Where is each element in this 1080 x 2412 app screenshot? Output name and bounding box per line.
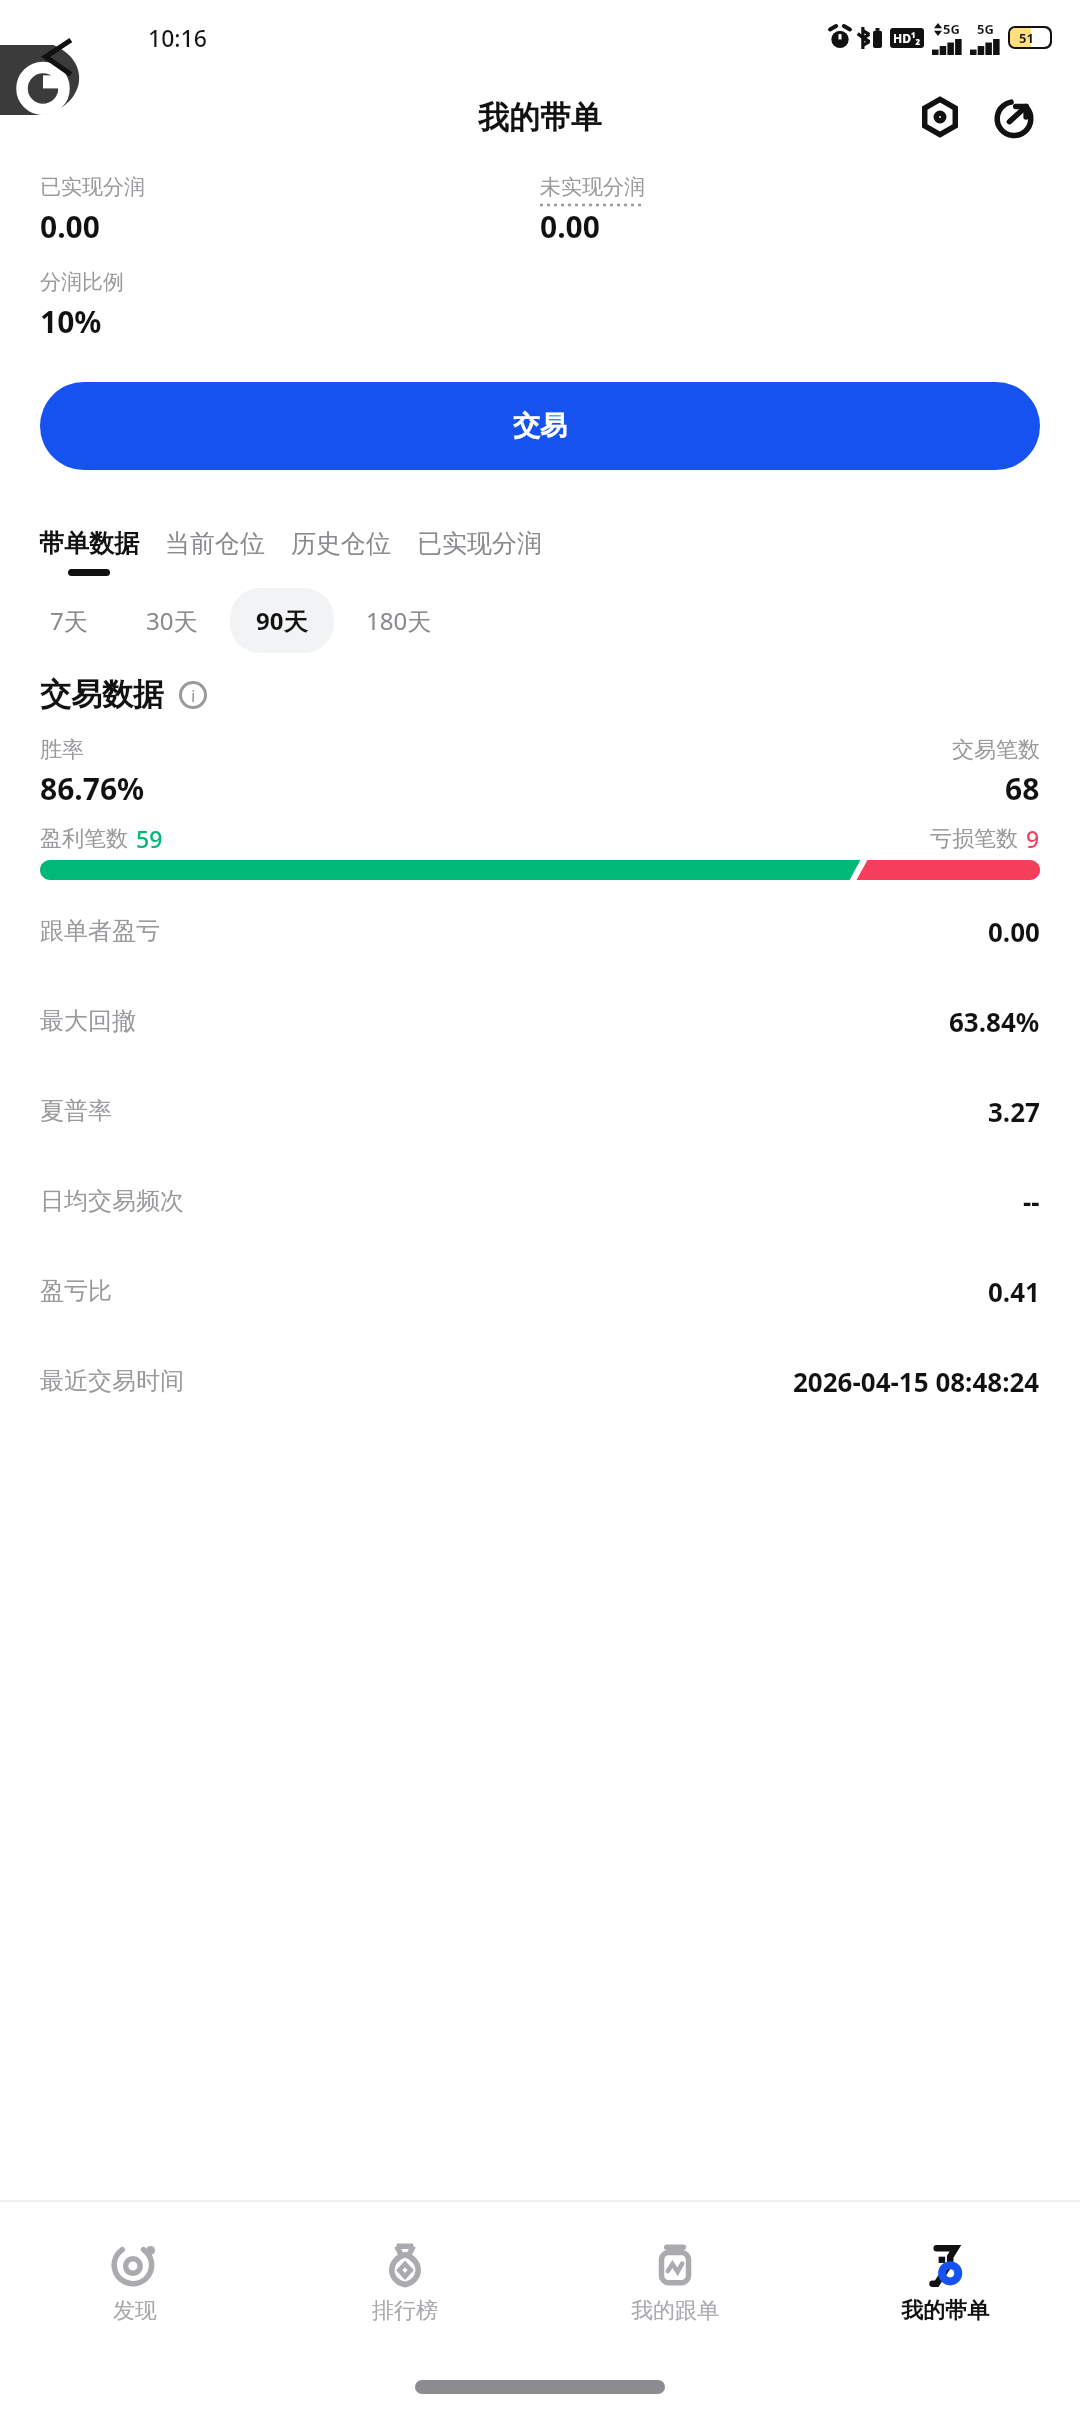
staticText: 夏普率 [40, 1096, 112, 1126]
staticText: 胜率 [40, 736, 84, 764]
staticText: -- [1023, 1184, 1040, 1219]
staticText: 68 [1005, 768, 1040, 809]
staticText: 我的跟单 [631, 2297, 719, 2325]
staticText: 0.00 [988, 914, 1040, 949]
staticText: 当前仓位 [165, 528, 265, 559]
staticText: 0.41 [988, 1274, 1040, 1309]
staticText: 已实现分润 [417, 528, 542, 559]
staticText: 分润比例 [40, 269, 124, 295]
staticText: 最近交易时间 [40, 1366, 184, 1396]
staticText: 跟单者盈亏 [40, 916, 160, 946]
staticText: 排行榜 [372, 2297, 438, 2325]
staticText: 交易笔数 [952, 736, 1040, 764]
staticText: 90天 [256, 604, 308, 637]
staticText: 7天 [50, 604, 88, 637]
staticText: 亏损笔数 [930, 825, 1018, 853]
button[interactable]: 历史仓位 [291, 528, 391, 569]
staticText: i [191, 684, 196, 707]
staticText: 0.00 [40, 206, 100, 247]
button[interactable]: 我的带单 [810, 2202, 1080, 2362]
button[interactable]: 90天 [230, 588, 334, 653]
button[interactable]: Info [176, 678, 210, 712]
staticText: 我的带单 [901, 2297, 989, 2325]
staticText: 最大回撤 [40, 1006, 136, 1036]
staticText: 5G [943, 20, 960, 38]
button[interactable]: Share [988, 91, 1040, 143]
staticText: 已实现分润 [40, 174, 145, 200]
staticText: 0.00 [540, 206, 600, 247]
staticText: HD¹₂ [893, 30, 921, 46]
button[interactable]: 我的跟单 [540, 2202, 810, 2362]
staticText: 86.76% [40, 768, 145, 809]
staticText: 我的带单 [478, 98, 602, 137]
button[interactable]: 发现 [0, 2202, 270, 2362]
button[interactable]: 排行榜 [270, 2202, 540, 2362]
staticText: 30天 [146, 604, 198, 637]
staticText: 180天 [366, 604, 432, 637]
staticText: 带单数据 [39, 528, 139, 559]
staticText: 历史仓位 [291, 528, 391, 559]
staticText: 10:16 [148, 22, 207, 53]
staticText: 51 [1019, 29, 1034, 47]
button[interactable]: 带单数据 [39, 528, 139, 576]
button[interactable]: Settings [914, 91, 966, 143]
staticText: 2026-04-15 08:48:24 [793, 1364, 1040, 1399]
staticText: 交易 [513, 409, 567, 443]
staticText: 日均交易频次 [40, 1186, 184, 1216]
staticText: 63.84% [949, 1004, 1040, 1039]
staticText: 9 [1026, 823, 1040, 854]
staticText: 59 [136, 823, 163, 854]
button[interactable]: 当前仓位 [165, 528, 265, 569]
staticText: 盈利笔数 [40, 825, 128, 853]
button[interactable]: 30天 [120, 588, 224, 653]
staticText: 10% [40, 301, 102, 342]
staticText: 3.27 [988, 1094, 1040, 1129]
button[interactable]: 7天 [24, 588, 114, 653]
button[interactable]: 交易 [40, 382, 1040, 470]
button[interactable]: Back [18, 87, 78, 147]
staticText: 发现 [113, 2297, 157, 2325]
button[interactable]: 已实现分润 [417, 528, 542, 569]
staticText: 5G [977, 20, 994, 38]
staticText: 盈亏比 [40, 1276, 112, 1306]
staticText: 未实现分润 [540, 174, 645, 200]
staticText: 交易数据 [40, 675, 164, 714]
button[interactable]: 180天 [340, 588, 458, 653]
